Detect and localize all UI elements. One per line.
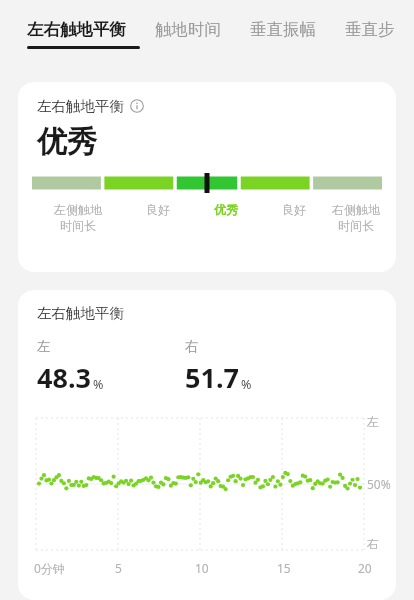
staticText: 左 [367,414,379,429]
staticText: % [241,376,252,393]
staticText: 右 [185,338,199,355]
staticText: 优秀 [196,202,256,217]
staticText: 0分钟 [34,560,65,576]
staticText: 左右触地平衡 [27,19,126,40]
staticText: 垂直步 [345,19,395,40]
staticText: 20 [358,560,372,576]
staticText: 左 [37,338,51,355]
button[interactable]: 触地时间 [155,0,230,52]
staticText: 触地时间 [155,19,221,40]
button[interactable]: 左右触地平衡 [27,0,140,52]
staticText: 优秀 [37,123,97,161]
staticText: % [93,376,104,393]
staticText: 右 [367,536,379,551]
button[interactable]: 左右触地平衡 [18,290,396,600]
staticText: 50% [367,476,391,492]
staticText: 10 [195,560,209,576]
staticText: 垂直振幅 [250,19,316,40]
staticText: 良好 [128,202,188,217]
staticText: 5 [115,560,122,576]
staticText: 48.3 [37,359,91,396]
button[interactable]: 左右触地平衡 [18,82,396,272]
button[interactable]: 垂直步 [345,0,414,52]
staticText: 左侧触地 时间长 [48,202,108,234]
staticText: 左右触地平衡 [37,97,124,115]
staticText: 51.7 [185,359,239,396]
staticText: 右侧触地 时间长 [326,202,386,234]
staticText: 左右触地平衡 [37,304,124,322]
button[interactable]: 垂直振幅 [250,0,325,52]
staticText: 15 [277,560,291,576]
button[interactable]: 关于左右触地平衡 [130,99,144,113]
staticText: 良好 [264,202,324,217]
